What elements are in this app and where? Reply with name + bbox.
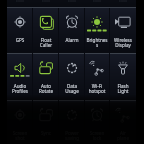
- staticText: GPS: [7, 37, 33, 43]
- button[interactable]: Float Caller: [33, 8, 59, 55]
- button[interactable]: Wi-Fi hotspot: [84, 54, 110, 101]
- staticText: xxxx: [59, 0, 85, 3]
- staticText: Brightnes s: [84, 37, 110, 48]
- staticText: Data Usage: [59, 83, 85, 94]
- button[interactable]: Wireless Display: [110, 8, 136, 55]
- staticText: xxxx: [7, 0, 33, 3]
- button[interactable]: Alarm: [59, 8, 85, 55]
- button[interactable]: GPS: [7, 8, 33, 55]
- staticText: Float Caller: [33, 37, 59, 48]
- staticText: xxxx: [84, 0, 110, 3]
- staticText: xxxx: [33, 0, 59, 3]
- staticText: Audio Profiles: [7, 83, 33, 94]
- staticText: Auto Rotate: [33, 83, 59, 94]
- staticText: Wi-Fi hotspot: [84, 83, 110, 94]
- button[interactable]: Flash Light: [110, 54, 136, 101]
- button[interactable]: Data Usage: [59, 54, 85, 101]
- staticText: Wireless Display: [110, 37, 136, 48]
- staticText: xxxx: [110, 0, 136, 3]
- button[interactable]: Brightness: [84, 8, 110, 55]
- button[interactable]: Auto Rotate: [33, 54, 59, 101]
- button[interactable]: Audio Profiles: [7, 54, 33, 101]
- staticText: Alarm: [59, 37, 85, 43]
- staticText: Flash Light: [110, 83, 136, 94]
